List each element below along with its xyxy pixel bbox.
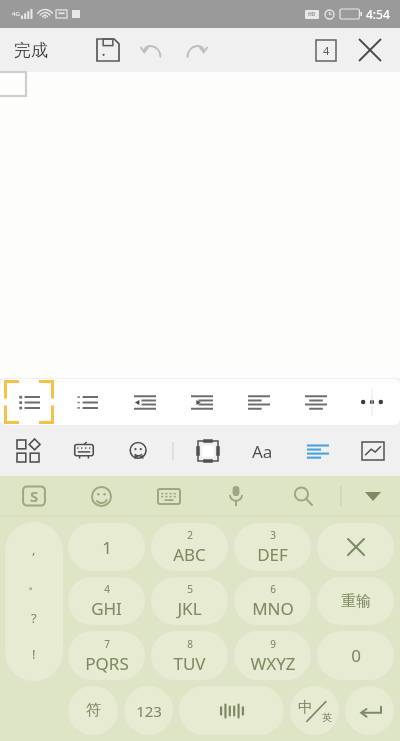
button[interactable]: Paragraph xyxy=(290,426,345,476)
button[interactable]: Align center xyxy=(287,379,344,425)
staticText: MNO xyxy=(252,597,294,620)
button[interactable]: Keyboard note xyxy=(56,426,111,476)
button[interactable]: 7 xyxy=(68,631,145,680)
button[interactable]: 符 xyxy=(68,686,118,735)
staticText: 1 xyxy=(102,536,112,559)
staticText: 4:54 xyxy=(366,6,390,22)
staticText: TUV xyxy=(173,652,206,675)
button[interactable]: Space xyxy=(179,686,284,735)
staticText: 4 xyxy=(323,43,330,58)
button[interactable]: 中 xyxy=(290,686,339,735)
button[interactable]: Voice input xyxy=(202,476,269,516)
button[interactable]: 3 xyxy=(234,523,311,571)
button[interactable]: Undo xyxy=(130,28,174,72)
staticText: 5 xyxy=(187,582,193,596)
button[interactable]: Numbered list xyxy=(58,379,116,425)
staticText: 7 xyxy=(104,637,110,651)
button[interactable]: Hide keyboard xyxy=(346,476,400,516)
button[interactable]: Sticker xyxy=(111,426,166,476)
button[interactable]: Enter xyxy=(345,686,394,735)
button[interactable]: , xyxy=(5,522,63,681)
button[interactable]: Bulleted list xyxy=(0,379,58,425)
staticText: 123 xyxy=(136,701,162,721)
staticText: , xyxy=(32,540,36,558)
button[interactable]: Insert image xyxy=(345,426,400,476)
staticText: ABC xyxy=(173,543,206,566)
button[interactable]: 4 xyxy=(68,577,145,625)
staticText: 8 xyxy=(187,637,193,651)
button[interactable]: Search xyxy=(269,476,336,516)
staticText: S xyxy=(30,486,39,506)
staticText: ? xyxy=(31,609,37,627)
staticText: 英 xyxy=(322,711,332,724)
button[interactable]: 2 xyxy=(151,523,228,571)
button[interactable]: 1 xyxy=(68,523,145,571)
button[interactable]: Close xyxy=(348,28,392,72)
button[interactable]: Emoji xyxy=(68,476,135,516)
button[interactable]: Redo xyxy=(174,28,218,72)
button[interactable]: 5 xyxy=(151,577,228,625)
button[interactable]: 9 xyxy=(234,631,311,680)
staticText: 6 xyxy=(270,582,276,596)
staticText: 中 xyxy=(298,698,313,717)
button[interactable]: Increase indent xyxy=(173,379,230,425)
staticText: 2 xyxy=(187,528,193,542)
button[interactable]: 重输 xyxy=(317,577,394,625)
button[interactable]: Save xyxy=(86,28,130,72)
button[interactable]: Backspace xyxy=(317,523,394,571)
staticText: HD xyxy=(308,11,316,18)
staticText: 符 xyxy=(86,701,101,720)
button[interactable]: More xyxy=(344,379,400,425)
staticText: 9 xyxy=(270,637,276,651)
staticText: WXYZ xyxy=(250,652,296,675)
staticText: 4G xyxy=(12,10,20,18)
staticText: DEF xyxy=(257,543,288,566)
staticText: 3 xyxy=(270,528,276,542)
button[interactable]: 8 xyxy=(151,631,228,680)
staticText: 重输 xyxy=(341,592,371,611)
button[interactable]: 0 xyxy=(317,631,394,680)
button[interactable]: 6 xyxy=(234,577,311,625)
staticText: 0 xyxy=(351,644,361,667)
staticText: PQRS xyxy=(85,652,129,675)
button[interactable]: Widgets xyxy=(0,426,56,476)
button[interactable]: Align left xyxy=(230,379,287,425)
button[interactable]: 完成 xyxy=(0,34,62,67)
staticText: 。 xyxy=(28,576,41,592)
staticText: 完成 xyxy=(14,40,48,61)
staticText: GHI xyxy=(91,597,122,620)
button[interactable]: Page count xyxy=(304,28,348,72)
button[interactable]: Font xyxy=(235,426,290,476)
button[interactable]: Keyboard layout xyxy=(135,476,202,516)
staticText: JKL xyxy=(177,597,202,620)
staticText: Aa xyxy=(252,440,273,463)
button[interactable]: 123 xyxy=(124,686,173,735)
button[interactable]: Select xyxy=(180,426,235,476)
staticText: ! xyxy=(32,645,36,663)
staticText: 4 xyxy=(104,582,110,596)
button[interactable]: Decrease indent xyxy=(116,379,173,425)
button[interactable]: Sogou input xyxy=(0,476,68,516)
